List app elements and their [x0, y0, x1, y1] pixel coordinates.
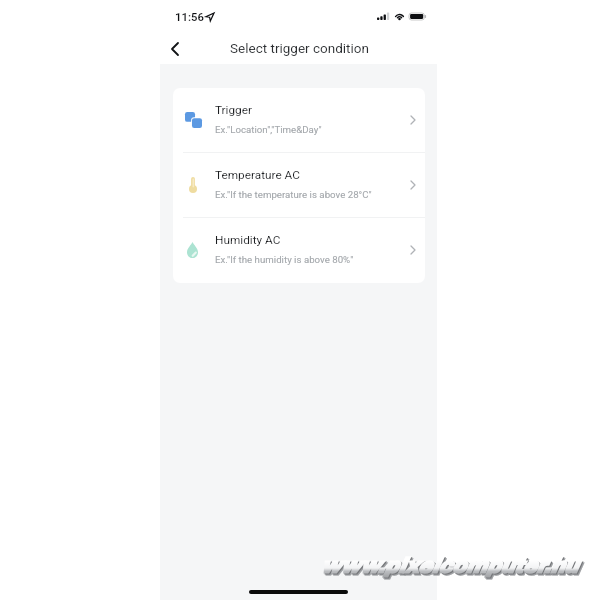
button[interactable]: Trigger [173, 88, 425, 152]
staticText: Trigger [215, 103, 252, 117]
staticText: Ex."Location","Time&Day" [215, 124, 322, 135]
staticText: Temperature AC [215, 168, 300, 182]
staticText: Select trigger condition [161, 40, 438, 56]
staticText: www.pixelcomputer.hu [320, 554, 577, 577]
staticText: Humidity AC [215, 233, 281, 247]
staticText: www.pixelcomputer.hu [322, 556, 579, 579]
staticText: Ex."If the humidity is above 80%" [215, 254, 354, 265]
staticText: www.pixelcomputer.hu [321, 555, 578, 578]
staticText: Ex."If the temperature is above 28°C" [215, 189, 372, 200]
button[interactable]: Temperature AC [173, 153, 425, 217]
button[interactable]: Back [161, 35, 189, 63]
button[interactable]: Humidity AC [173, 218, 425, 282]
staticText: 11:56 [175, 11, 204, 24]
